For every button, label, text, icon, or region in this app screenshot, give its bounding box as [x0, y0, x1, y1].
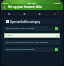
staticText: Name — [6, 34, 13, 37]
staticText: Set up your browser data — [8, 5, 42, 9]
button[interactable]: Settings — [4, 19, 60, 24]
button[interactable]: Back — [3, 6, 6, 9]
button[interactable]: Back up All the Clipboards — [4, 47, 60, 52]
button[interactable]: Back — [1, 4, 63, 10]
other: Settings — [6, 20, 9, 23]
button[interactable]: Enabled — [55, 48, 58, 51]
staticText: 9:41 — [3, 1, 8, 4]
staticText: Tell browser how it's done — [6, 27, 54, 30]
staticText: Back up All the Clipboards — [6, 48, 54, 51]
button[interactable]: Tell browser how it's done — [4, 26, 60, 31]
staticText: 100% — [54, 1, 61, 4]
button[interactable]: Enabled — [55, 27, 58, 30]
staticText: Open and add a category — [10, 20, 41, 23]
button[interactable]: Name — [4, 33, 60, 38]
staticText: mid day — [27, 1, 36, 4]
staticText: Set up browser getting all data storage — [6, 41, 48, 44]
button[interactable]: Set up browser getting all data storage — [4, 40, 60, 45]
